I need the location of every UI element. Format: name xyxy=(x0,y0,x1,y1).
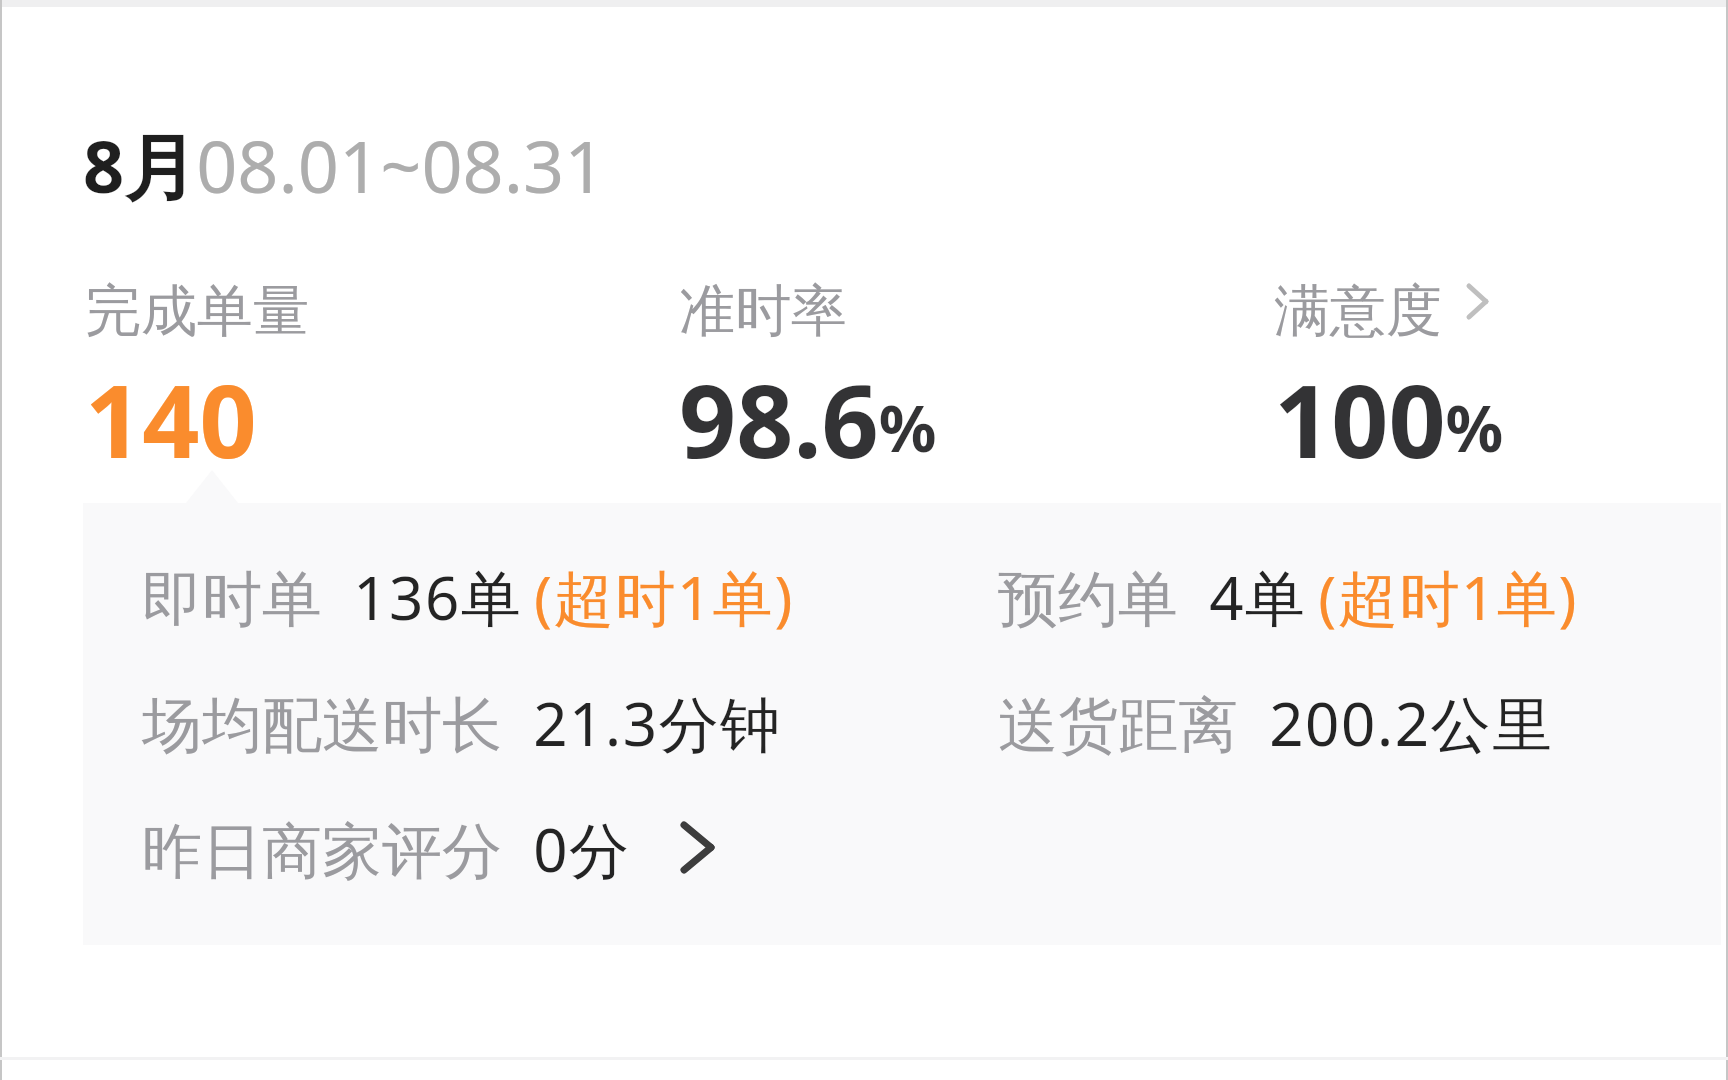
button[interactable]: 准时率 xyxy=(679,276,1099,466)
button[interactable]: 预约单 4单 (超时1单) xyxy=(998,556,1579,638)
staticText: 98.6% xyxy=(679,351,937,466)
staticText: 昨日商家评分 0分 xyxy=(142,808,631,890)
staticText: 满意度 xyxy=(1274,276,1442,347)
staticText: 预约单 4单 (超时1单) xyxy=(998,556,1579,638)
button[interactable]: 即时单 136单 (超时1单) xyxy=(142,556,795,638)
staticText: 100% xyxy=(1274,351,1504,466)
other: 查看满意度详情 xyxy=(1466,283,1489,320)
button[interactable]: 送货距离 200.2公里 xyxy=(998,682,1554,764)
staticText: 送货距离 200.2公里 xyxy=(998,682,1554,764)
staticText: 140 xyxy=(85,351,257,466)
button[interactable]: 满意度 xyxy=(1274,276,1694,466)
button[interactable]: 场均配送时长 21.3分钟 xyxy=(142,682,782,764)
staticText: 完成单量 xyxy=(85,276,309,347)
staticText: 场均配送时长 21.3分钟 xyxy=(142,682,782,764)
staticText: 准时率 xyxy=(679,276,847,347)
staticText: 8月08.01~08.31 xyxy=(83,116,606,214)
staticText: 即时单 136单 (超时1单) xyxy=(142,556,795,638)
other: 查看昨日商家评分 xyxy=(681,822,714,873)
button[interactable]: 完成单量 xyxy=(85,276,505,466)
button[interactable]: 昨日商家评分 0分 xyxy=(142,808,714,890)
